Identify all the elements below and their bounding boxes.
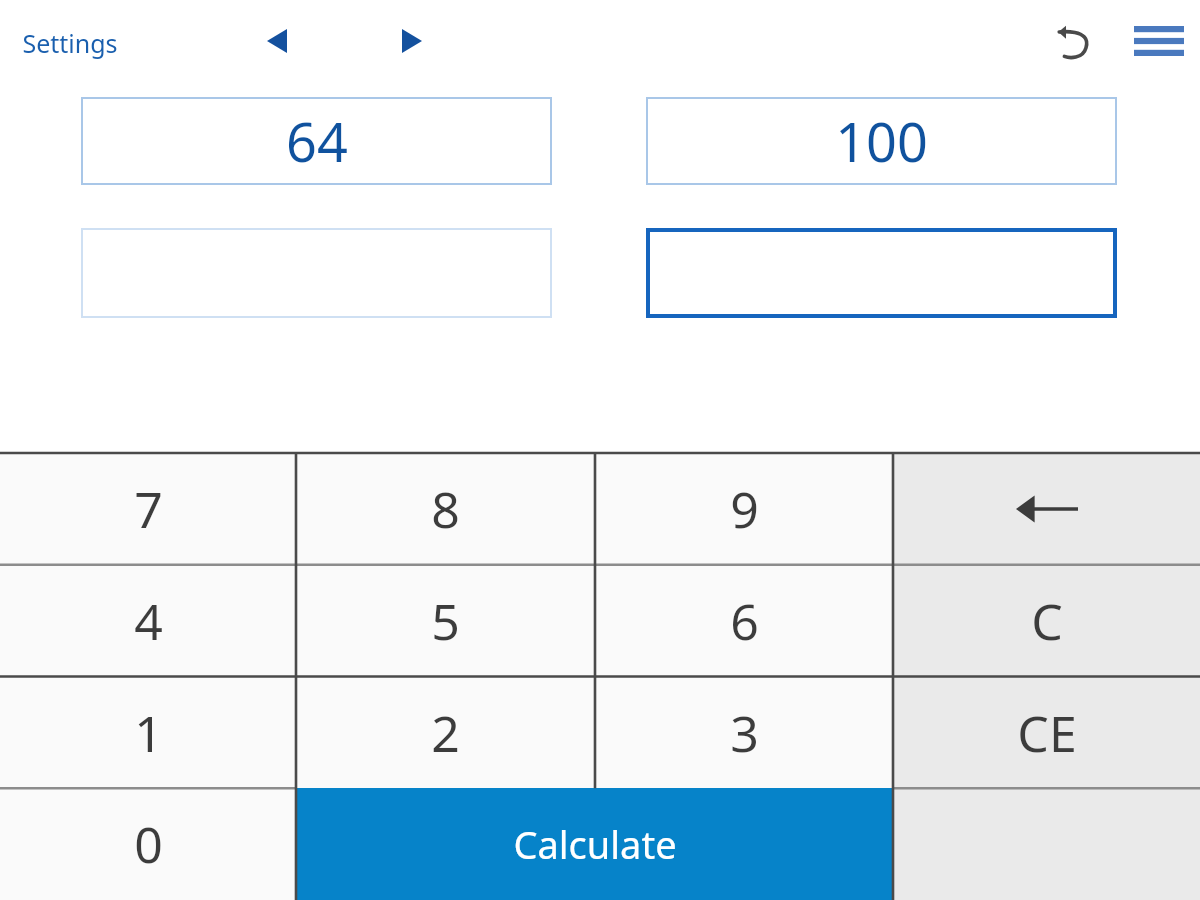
button[interactable]: 4 [0, 565, 296, 677]
button[interactable]: Settings [22, 26, 118, 60]
staticText: 5 [431, 587, 460, 655]
button[interactable]: Backspace [893, 453, 1200, 565]
button[interactable]: 9 [595, 453, 893, 565]
button[interactable]: 7 [0, 453, 296, 565]
staticText: Settings [22, 26, 118, 60]
staticText: 8 [431, 475, 460, 543]
button[interactable]: 3 [595, 677, 893, 789]
button[interactable]: 1 [0, 677, 296, 789]
button[interactable]: 100 [646, 97, 1117, 185]
staticText: 3 [730, 699, 759, 767]
button[interactable]: Previous [258, 22, 296, 60]
staticText: CE [1017, 699, 1077, 767]
button[interactable] [81, 228, 552, 318]
button[interactable]: Blank [893, 788, 1200, 900]
staticText: 64 [286, 104, 348, 178]
staticText: 100 [835, 104, 928, 178]
button[interactable]: Undo [1046, 16, 1102, 68]
button[interactable]: CE [893, 677, 1200, 789]
staticText: Calculate [513, 818, 677, 870]
staticText: 9 [730, 475, 759, 543]
button[interactable] [646, 228, 1117, 318]
button[interactable]: Next [393, 22, 431, 60]
staticText: 0 [134, 810, 163, 878]
staticText: 2 [431, 699, 460, 767]
button[interactable]: 6 [595, 565, 893, 677]
button[interactable]: 0 [0, 788, 296, 900]
button[interactable]: 64 [81, 97, 552, 185]
button[interactable]: 2 [296, 677, 595, 789]
staticText: 4 [134, 587, 163, 655]
button[interactable]: Calculate [296, 788, 893, 900]
button[interactable]: Menu [1127, 14, 1191, 68]
staticText: 6 [730, 587, 759, 655]
button[interactable]: C [893, 565, 1200, 677]
staticText: 7 [134, 475, 163, 543]
button[interactable]: 5 [296, 565, 595, 677]
button[interactable]: 8 [296, 453, 595, 565]
staticText: 1 [134, 699, 163, 767]
staticText: C [1031, 587, 1063, 655]
